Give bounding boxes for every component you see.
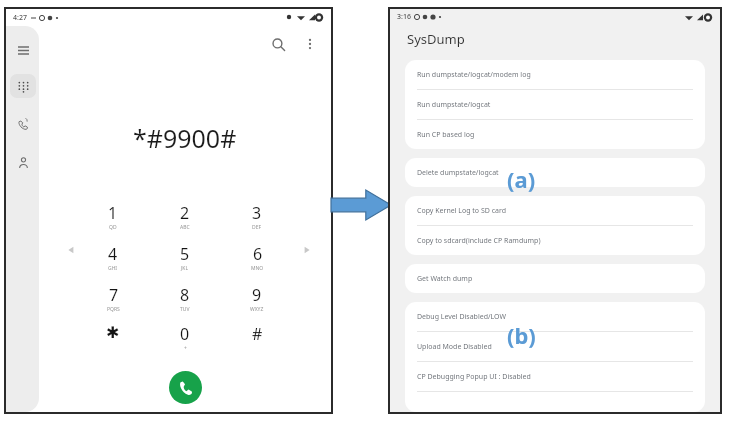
staticText: 6 bbox=[253, 243, 263, 265]
staticText: Copy to sdcard(include CP Ramdump) bbox=[417, 236, 541, 246]
staticText: 0 bbox=[180, 323, 190, 345]
staticText: 5 bbox=[180, 243, 190, 265]
staticText: ABC bbox=[180, 224, 190, 231]
staticText: SysDump bbox=[407, 30, 465, 48]
staticText: 3:16 bbox=[397, 12, 411, 22]
staticText: 2 bbox=[180, 202, 190, 224]
button[interactable]: Run CP based log bbox=[405, 120, 705, 149]
button[interactable]: 8 bbox=[159, 284, 211, 314]
button[interactable]: Run dumpstate/logcat/modem log bbox=[405, 60, 705, 89]
staticText: *#9900# bbox=[133, 121, 237, 155]
staticText: CP Debugging Popup UI : Disabled bbox=[417, 372, 531, 382]
button[interactable]: 6 bbox=[231, 243, 283, 273]
button[interactable]: Debug Level Disabled/LOW bbox=[405, 302, 705, 331]
staticText: 4:27 bbox=[13, 13, 27, 23]
button[interactable]: 7 bbox=[87, 284, 139, 314]
staticText: WXYZ bbox=[250, 306, 264, 313]
button[interactable]: Recents bbox=[11, 112, 35, 136]
button[interactable]: 2 bbox=[159, 202, 211, 232]
staticText: 4 bbox=[108, 243, 118, 265]
staticText: 3 bbox=[252, 202, 262, 224]
button[interactable]: Menu bbox=[11, 38, 35, 62]
staticText: 8 bbox=[180, 284, 190, 306]
staticText: ✱ bbox=[106, 323, 120, 342]
staticText: (a) bbox=[507, 164, 536, 194]
button[interactable]: Get Watch dump bbox=[405, 264, 705, 293]
staticText: DEF bbox=[252, 224, 262, 231]
staticText: 9 bbox=[252, 284, 262, 306]
button[interactable]: ✱ bbox=[87, 323, 139, 353]
staticText: + bbox=[184, 345, 187, 352]
button[interactable]: Call bbox=[169, 371, 202, 404]
staticText: GHI bbox=[108, 265, 118, 272]
staticText: MNO bbox=[251, 265, 264, 272]
staticText: # bbox=[252, 323, 263, 345]
button[interactable]: Run dumpstate/logcat bbox=[405, 90, 705, 119]
staticText: Upload Mode Disabled bbox=[417, 342, 492, 352]
staticText: Run dumpstate/logcat bbox=[417, 100, 491, 110]
staticText: Run CP based log bbox=[417, 130, 475, 140]
button[interactable]: CP Debugging Popup UI : Disabled bbox=[405, 362, 705, 391]
staticText: 7 bbox=[109, 284, 119, 306]
button[interactable]: Delete dumpstate/logcat bbox=[405, 158, 705, 187]
staticText: Copy Kernel Log to SD card bbox=[417, 206, 507, 216]
button[interactable]: 5 bbox=[159, 243, 211, 273]
button[interactable]: # bbox=[231, 323, 283, 353]
staticText: Debug Level Disabled/LOW bbox=[417, 312, 507, 322]
button[interactable]: 0 bbox=[159, 323, 211, 353]
button[interactable]: Copy to sdcard(include CP Ramdump) bbox=[405, 226, 705, 255]
button[interactable]: 1 bbox=[87, 202, 139, 232]
staticText: (b) bbox=[507, 320, 536, 350]
staticText: Delete dumpstate/logcat bbox=[417, 168, 499, 178]
button[interactable]: Copy Kernel Log to SD card bbox=[405, 196, 705, 225]
staticText: Get Watch dump bbox=[417, 274, 473, 284]
button[interactable]: 4 bbox=[87, 243, 139, 273]
staticText: QD bbox=[109, 224, 117, 231]
staticText: Run dumpstate/logcat/modem log bbox=[417, 70, 531, 80]
staticText: 1 bbox=[108, 202, 118, 224]
staticText: TUV bbox=[180, 306, 190, 313]
staticText: PQRS bbox=[107, 306, 120, 313]
button[interactable]: 3 bbox=[231, 202, 283, 232]
staticText: JKL bbox=[181, 265, 189, 272]
button[interactable]: 9 bbox=[231, 284, 283, 314]
button[interactable]: Upload Mode Disabled bbox=[405, 332, 705, 361]
button[interactable]: Keypad bbox=[10, 74, 36, 98]
button[interactable]: More options bbox=[297, 31, 323, 57]
button[interactable]: Search bbox=[265, 31, 291, 57]
button[interactable]: Contacts bbox=[11, 150, 35, 174]
